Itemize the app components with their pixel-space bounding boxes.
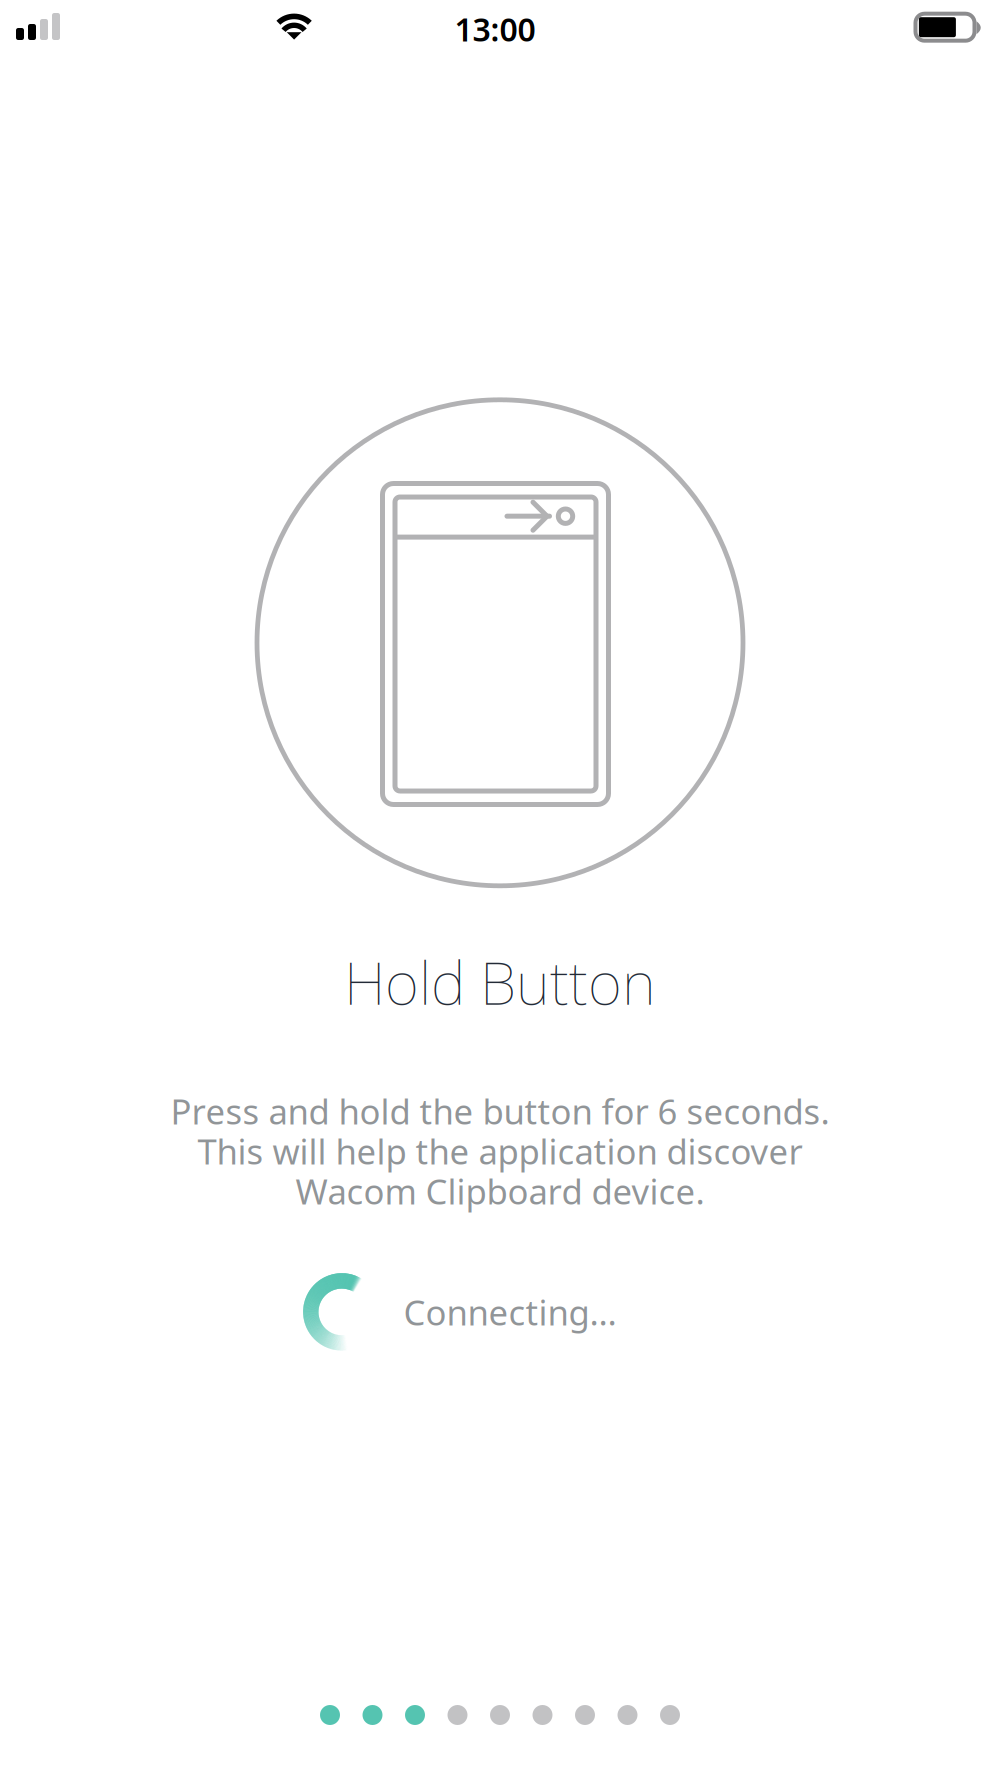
staticText: Hold Button [344, 943, 656, 1021]
staticText: Press and hold the button for 6 seconds. [170, 1088, 829, 1134]
staticText: Wacom Clipboard device. [295, 1168, 704, 1214]
staticText: This will help the application discover [197, 1128, 802, 1174]
staticText: 13:00 [454, 8, 535, 50]
button[interactable]: Page 3 of 9 [310, 1695, 690, 1735]
staticText: Connecting... [403, 1289, 616, 1335]
